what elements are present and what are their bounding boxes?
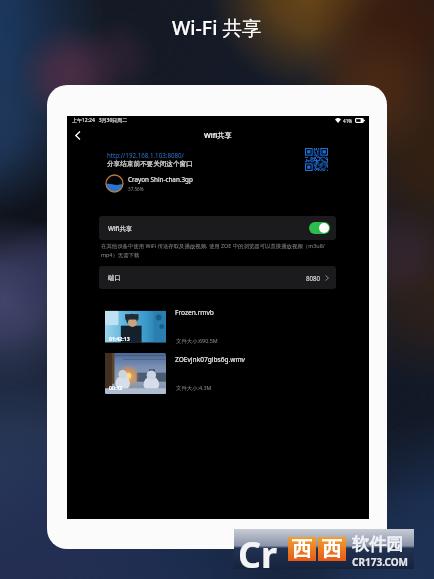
staticText: CR173.COM [352,555,409,569]
staticText: 上午12:24 3月30日周二 [72,117,128,124]
staticText: 文件大小:690.5M [176,337,218,344]
staticText: Crayon Shin-chan.3gp [128,175,193,184]
button[interactable]: 01:42:13 [67,306,369,350]
staticText: 文件大小:4.3M [176,384,212,391]
button[interactable]: 端口 [99,266,336,289]
staticText: 在其他设备中使用 WiFi 传送存取及播放视频, 使用 ZOE 中的浏览器可以直… [101,242,337,258]
staticText: ZOEvjnk07glbs6g.wmv [175,355,245,364]
staticText: Cr [238,530,278,570]
staticText: 西 [322,537,342,561]
staticText: http://192.168.1.103:8080/ [107,151,184,159]
staticText: 41% [343,118,353,124]
staticText: 8080 [306,274,321,282]
staticText: Wifi共享 [108,224,133,233]
staticText: 端口 [108,274,121,282]
staticText: 西 [292,537,312,561]
staticText: Wifi共享 [204,130,232,140]
staticText: 00:12 [109,384,123,391]
button[interactable]: Back [70,128,84,142]
button[interactable]: Wifi共享 [99,216,336,240]
staticText: Frozen.rmvb [175,308,214,317]
staticText: 软件园 [352,534,403,555]
staticText: Wi-Fi 共享 [172,14,262,41]
button[interactable]: 00:12 [67,353,369,397]
staticText: 01:42:13 [109,335,130,342]
staticText: 分享结束前不要关闭这个窗口 [107,160,193,168]
staticText: 37.56% [128,186,144,192]
